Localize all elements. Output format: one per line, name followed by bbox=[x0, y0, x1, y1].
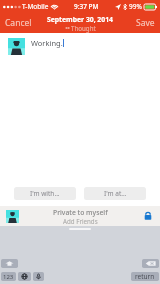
button[interactable]: Shift bbox=[1, 259, 18, 268]
staticText: Add Friends bbox=[63, 217, 98, 225]
button[interactable]: Switch keyboard bbox=[18, 272, 31, 281]
staticText: 123 bbox=[3, 273, 14, 281]
staticText: 9:37 PM bbox=[74, 2, 99, 11]
staticText: Cancel bbox=[5, 17, 32, 29]
staticText: September 30, 2014 bbox=[47, 15, 113, 24]
staticText: 99% bbox=[129, 2, 142, 11]
staticText: Thought bbox=[71, 24, 96, 32]
staticText: Private to myself bbox=[53, 208, 108, 217]
button[interactable]: Dictate bbox=[33, 272, 44, 281]
button[interactable]: return bbox=[131, 272, 159, 281]
button[interactable]: I'm with... bbox=[14, 187, 76, 200]
staticText: Save bbox=[136, 17, 155, 29]
staticText: T-Mobile bbox=[22, 2, 49, 11]
button[interactable]: 123 bbox=[1, 272, 16, 281]
staticText: I'm at... bbox=[104, 189, 127, 198]
staticText: Working. bbox=[31, 38, 63, 48]
staticText: return bbox=[135, 272, 155, 281]
button[interactable]: Cancel bbox=[0, 13, 37, 33]
button[interactable]: Privacy lock bbox=[143, 211, 153, 221]
staticText: I'm with... bbox=[30, 189, 60, 198]
button[interactable]: Private to myself bbox=[0, 206, 160, 226]
button[interactable]: Save bbox=[131, 13, 160, 33]
button[interactable]: I'm at... bbox=[84, 187, 146, 200]
button[interactable]: Delete bbox=[142, 259, 159, 268]
